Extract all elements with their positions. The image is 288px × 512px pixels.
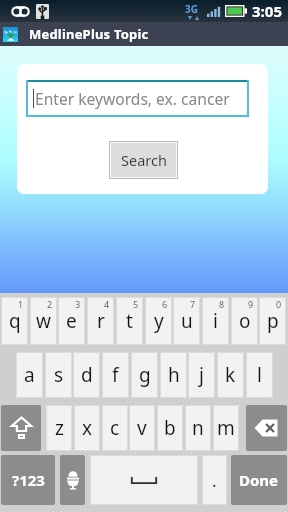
button[interactable]: Delete bbox=[246, 405, 287, 451]
button[interactable]: t bbox=[116, 297, 143, 345]
staticText: m bbox=[217, 415, 235, 441]
button[interactable]: y bbox=[145, 297, 172, 345]
staticText: b bbox=[164, 415, 176, 441]
staticText: d bbox=[81, 362, 93, 388]
button[interactable]: l bbox=[246, 352, 273, 398]
button[interactable]: Space bbox=[90, 455, 198, 505]
staticText: 8 bbox=[219, 298, 225, 310]
button[interactable]: z bbox=[46, 405, 72, 451]
staticText: f bbox=[112, 362, 119, 388]
button[interactable]: i bbox=[202, 297, 229, 345]
staticText: c bbox=[110, 415, 120, 441]
staticText: ?123 bbox=[12, 470, 45, 490]
button[interactable]: Search bbox=[111, 143, 176, 177]
staticText: 0 bbox=[276, 298, 282, 310]
staticText: k bbox=[225, 362, 236, 388]
staticText: u bbox=[181, 308, 193, 334]
staticText: a bbox=[24, 362, 35, 388]
staticText: w bbox=[36, 308, 51, 334]
staticText: 3:05 bbox=[252, 1, 282, 21]
staticText: t bbox=[126, 308, 133, 334]
staticText: e bbox=[66, 308, 77, 334]
button[interactable]: w bbox=[30, 297, 57, 345]
button[interactable]: c bbox=[102, 405, 128, 451]
staticText: l bbox=[257, 362, 262, 388]
staticText: 4 bbox=[104, 298, 110, 310]
button[interactable]: j bbox=[188, 352, 215, 398]
button[interactable]: q bbox=[1, 297, 28, 345]
staticText: MedlinePlus Topic bbox=[29, 25, 149, 43]
staticText: 2 bbox=[47, 298, 53, 310]
staticText: Enter keywords, ex. cancer bbox=[35, 88, 230, 109]
staticText: i bbox=[213, 308, 218, 334]
staticText: y bbox=[154, 308, 164, 334]
button[interactable]: k bbox=[217, 352, 244, 398]
staticText: Done bbox=[239, 470, 279, 490]
button[interactable]: . bbox=[202, 455, 227, 505]
button[interactable]: u bbox=[173, 297, 200, 345]
button[interactable]: d bbox=[73, 352, 100, 398]
button[interactable]: p bbox=[259, 297, 286, 345]
button[interactable]: a bbox=[16, 352, 43, 398]
button[interactable]: ?123 bbox=[1, 455, 55, 505]
button[interactable]: Done bbox=[231, 455, 287, 505]
staticText: . bbox=[212, 469, 217, 492]
staticText: o bbox=[239, 308, 251, 334]
staticText: n bbox=[192, 415, 204, 441]
button[interactable]: e bbox=[58, 297, 85, 345]
button[interactable]: Enter keywords, ex. cancer bbox=[26, 80, 249, 117]
staticText: x bbox=[82, 415, 93, 441]
button[interactable]: f bbox=[102, 352, 129, 398]
staticText: 7 bbox=[190, 298, 196, 310]
staticText: j bbox=[199, 362, 204, 388]
button[interactable]: m bbox=[213, 405, 239, 451]
button[interactable]: x bbox=[74, 405, 100, 451]
staticText: s bbox=[54, 362, 64, 388]
staticText: 3 bbox=[75, 298, 81, 310]
staticText: h bbox=[168, 362, 180, 388]
button[interactable]: Voice input bbox=[60, 455, 85, 505]
other: Space bbox=[90, 455, 198, 505]
button[interactable]: s bbox=[45, 352, 72, 398]
staticText: p bbox=[267, 308, 279, 334]
button[interactable]: o bbox=[231, 297, 258, 345]
button[interactable]: b bbox=[157, 405, 183, 451]
button[interactable]: n bbox=[185, 405, 211, 451]
button[interactable]: g bbox=[131, 352, 158, 398]
staticText: Search bbox=[121, 150, 167, 170]
staticText: v bbox=[137, 415, 147, 441]
button[interactable]: Shift bbox=[1, 405, 41, 451]
staticText: z bbox=[55, 415, 64, 441]
staticText: 9 bbox=[248, 298, 254, 310]
staticText: r bbox=[97, 308, 105, 334]
staticText: 5 bbox=[133, 298, 139, 310]
staticText: q bbox=[9, 308, 21, 334]
staticText: 6 bbox=[162, 298, 168, 310]
staticText: 1 bbox=[18, 298, 24, 310]
staticText: 3G bbox=[185, 2, 198, 16]
staticText: g bbox=[139, 362, 151, 388]
button[interactable]: r bbox=[87, 297, 114, 345]
button[interactable]: v bbox=[129, 405, 155, 451]
button[interactable]: h bbox=[160, 352, 187, 398]
